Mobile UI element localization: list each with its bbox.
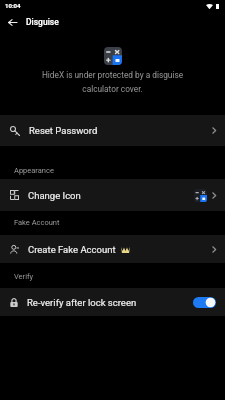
button[interactable]: Back xyxy=(4,13,21,31)
staticText: Create Fake Account xyxy=(28,244,116,255)
staticText: Disguise xyxy=(26,17,59,27)
staticText: 10:04 xyxy=(5,2,21,9)
staticText: Appearance xyxy=(14,166,54,175)
button[interactable]: Create Fake Account xyxy=(0,235,225,263)
staticText: Fake Account xyxy=(14,218,60,227)
button[interactable]: Re-verify after lock screen xyxy=(0,288,225,316)
button[interactable]: Change Icon xyxy=(0,179,225,211)
staticText: Re-verify after lock screen xyxy=(27,297,137,308)
staticText: Verify xyxy=(14,272,34,281)
staticText: HideX is under protected by a disguise c… xyxy=(38,70,187,95)
staticText: Change Icon xyxy=(28,190,81,201)
button[interactable]: Reset Password xyxy=(0,115,225,146)
button[interactable]: Re-verify after lock screen toggle xyxy=(193,295,216,309)
staticText: Reset Password xyxy=(29,125,98,136)
